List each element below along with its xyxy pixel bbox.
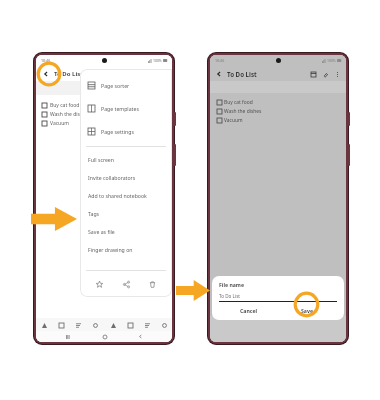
button[interactable]: Page templates: [80, 97, 172, 120]
button[interactable]: Add to shared notebook: [80, 186, 172, 204]
button[interactable]: Finger drawing on: [80, 240, 172, 258]
button[interactable]: Save as file: [80, 222, 172, 240]
button[interactable]: Favorite: [93, 278, 106, 291]
staticText: Cancel: [240, 307, 258, 314]
staticText: Buy cat food: [224, 99, 253, 106]
staticText: Add to shared notebook: [88, 192, 147, 199]
staticText: Page templates: [101, 105, 139, 112]
staticText: Page settings: [101, 128, 134, 135]
staticText: Save: [301, 307, 314, 314]
staticText: 100%: [153, 58, 162, 63]
button[interactable]: Back: [40, 68, 51, 79]
button[interactable]: Back: [136, 332, 145, 341]
staticText: Buy cat food: [50, 102, 80, 109]
button[interactable]: Buy cat food: [217, 98, 253, 107]
button[interactable]: Recents: [63, 332, 72, 341]
staticText: Vacuum: [224, 117, 243, 124]
button[interactable]: Tool 2: [57, 321, 65, 329]
staticText: Tags: [88, 210, 100, 217]
staticText: File name: [219, 281, 245, 288]
button[interactable]: Cancel: [219, 302, 278, 318]
button[interactable]: Tool 6: [126, 321, 134, 329]
button[interactable]: Save: [278, 302, 337, 318]
staticText: Vacuum: [50, 120, 69, 127]
staticText: Finger drawing on: [88, 246, 133, 253]
staticText: Full screen: [88, 156, 114, 163]
button[interactable]: Tool 1: [40, 321, 48, 329]
staticText: 10:46: [215, 58, 225, 63]
button[interactable]: Tool 3: [74, 321, 82, 329]
button[interactable]: Invite collaborators: [80, 168, 172, 186]
button[interactable]: Wash the dishes: [42, 110, 89, 119]
button[interactable]: Tags: [80, 204, 172, 222]
button[interactable]: Attach: [320, 69, 330, 79]
staticText: Save as file: [88, 228, 115, 235]
button[interactable]: Page view: [308, 69, 318, 79]
staticText: Wash the dishes: [50, 111, 89, 118]
button[interactable]: Home: [100, 332, 109, 341]
button[interactable]: Page settings: [80, 120, 172, 143]
button[interactable]: Vacuum: [42, 119, 69, 128]
button[interactable]: Tool 4: [91, 321, 99, 329]
staticText: Wash the dishes: [224, 108, 262, 115]
staticText: Page sorter: [101, 82, 130, 89]
button[interactable]: Share: [120, 278, 133, 291]
button[interactable]: Tool 7: [143, 321, 151, 329]
staticText: To Do List: [227, 70, 257, 78]
button[interactable]: More options: [332, 69, 342, 79]
staticText: 100%: [327, 58, 336, 63]
staticText: Invite collaborators: [88, 174, 136, 181]
staticText: To Do List: [54, 70, 83, 78]
staticText: To Do List: [219, 293, 240, 299]
button[interactable]: Full screen: [80, 150, 172, 168]
staticText: 10:46: [41, 58, 51, 63]
button[interactable]: Buy cat food: [42, 101, 80, 110]
button[interactable]: Page sorter: [80, 74, 172, 97]
button[interactable]: Vacuum: [217, 116, 243, 125]
button[interactable]: Delete: [146, 278, 159, 291]
button[interactable]: Wash the dishes: [217, 107, 262, 116]
button[interactable]: Tool 8: [160, 321, 168, 329]
button[interactable]: Back: [214, 69, 224, 79]
button[interactable]: Tool 5: [109, 321, 117, 329]
